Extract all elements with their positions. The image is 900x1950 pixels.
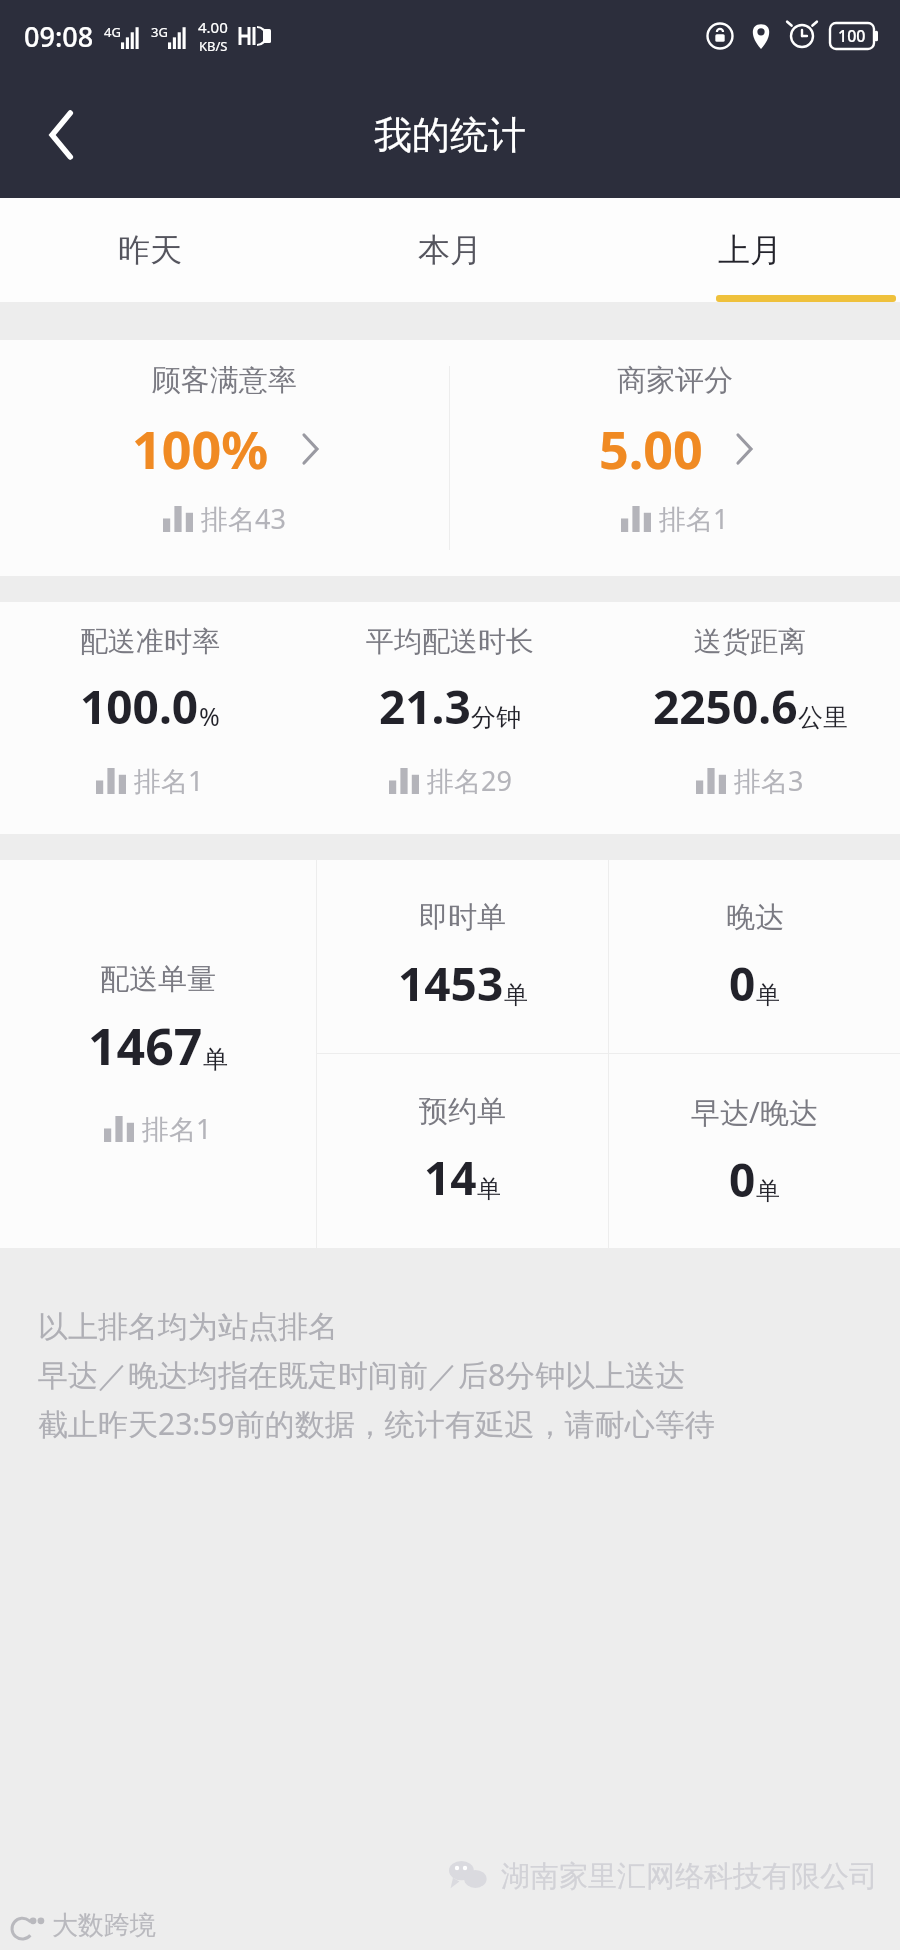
button[interactable]: 顾客满意率: [0, 340, 449, 576]
staticText: 排名1: [134, 762, 204, 799]
staticText: 以上排名均为站点排名: [38, 1308, 338, 1346]
staticText: 送货距离: [694, 624, 806, 659]
staticText: 2250.6: [653, 675, 798, 738]
staticText: 即时单: [419, 899, 506, 936]
staticText: 21.3: [379, 675, 471, 738]
staticText: 排名1: [659, 500, 729, 537]
staticText: 1453: [398, 952, 504, 1015]
staticText: 排名43: [201, 500, 286, 537]
staticText: 配送准时率: [80, 624, 220, 659]
staticText: 100.0: [80, 675, 199, 738]
staticText: 晚达: [726, 899, 784, 936]
staticText: 昨天: [118, 230, 182, 270]
staticText: 公里: [798, 702, 848, 733]
staticText: 我的统计: [374, 111, 526, 159]
staticText: 平均配送时长: [366, 624, 534, 659]
staticText: 4.00: [198, 17, 228, 37]
staticText: %: [199, 699, 220, 733]
staticText: 本月: [418, 230, 482, 270]
staticText: 配送单量: [100, 961, 216, 998]
staticText: 4G: [104, 23, 121, 41]
staticText: 顾客满意率: [152, 362, 297, 399]
staticText: KB/S: [199, 37, 228, 55]
staticText: 截止昨天23:59前的数据，统计有延迟，请耐心等待: [38, 1403, 715, 1444]
staticText: 0: [729, 1148, 756, 1211]
staticText: 0: [729, 952, 756, 1015]
staticText: 商家评分: [617, 362, 733, 399]
staticText: 排名1: [142, 1110, 212, 1147]
staticText: 单: [203, 1044, 228, 1075]
button[interactable]: 预约单: [317, 1054, 608, 1248]
staticText: 早达/晚达: [691, 1092, 818, 1132]
staticText: 单: [477, 1174, 501, 1204]
button[interactable]: 昨天: [0, 198, 300, 302]
staticText: 排名29: [427, 762, 512, 799]
staticText: 5.00: [599, 413, 703, 484]
staticText: 湖南家里汇网络科技有限公司: [501, 1858, 878, 1895]
staticText: 1467: [88, 1012, 203, 1080]
staticText: 09:08: [24, 18, 94, 55]
staticText: 100%: [132, 413, 269, 484]
button[interactable]: 晚达: [609, 860, 900, 1053]
button[interactable]: 早达/晚达: [609, 1054, 900, 1248]
button[interactable]: 即时单: [317, 860, 608, 1053]
staticText: 上月: [718, 230, 782, 270]
staticText: 单: [756, 1176, 780, 1206]
staticText: 单: [756, 980, 780, 1010]
button[interactable]: 本月: [300, 198, 600, 302]
button[interactable]: 上月: [600, 198, 900, 302]
staticText: 3G: [151, 23, 168, 41]
staticText: 14: [424, 1146, 477, 1209]
staticText: 单: [504, 980, 528, 1010]
staticText: 大数跨境: [52, 1909, 156, 1942]
staticText: 排名3: [734, 762, 804, 799]
staticText: 100: [838, 25, 866, 47]
staticText: 预约单: [419, 1093, 506, 1130]
button[interactable]: Back: [24, 97, 100, 173]
staticText: 早达／晚达均指在既定时间前／后8分钟以上送达: [38, 1354, 686, 1395]
button[interactable]: 送货距离: [600, 602, 900, 834]
button[interactable]: 配送单量: [0, 860, 316, 1248]
button[interactable]: 平均配送时长: [300, 602, 600, 834]
button[interactable]: 配送准时率: [0, 602, 300, 834]
staticText: 分钟: [471, 702, 521, 733]
button[interactable]: 商家评分: [450, 340, 900, 576]
